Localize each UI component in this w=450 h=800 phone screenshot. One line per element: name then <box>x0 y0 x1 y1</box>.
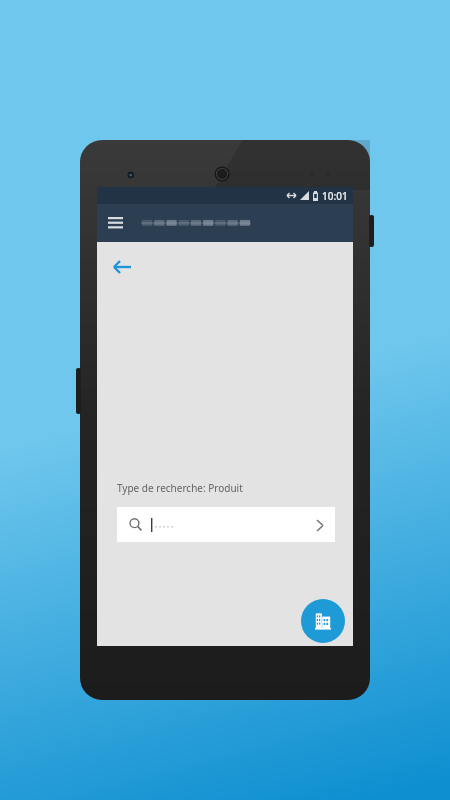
button[interactable]: Menu <box>97 205 133 241</box>
button[interactable]: Rechercher <box>305 510 335 540</box>
staticText: Type de recherche: Produit <box>117 481 243 495</box>
button[interactable]: Retour <box>107 252 137 282</box>
staticText: 10:01 <box>322 189 348 203</box>
button[interactable]: Rechercher <box>117 507 335 542</box>
button[interactable]: Recherche par société <box>301 599 345 643</box>
